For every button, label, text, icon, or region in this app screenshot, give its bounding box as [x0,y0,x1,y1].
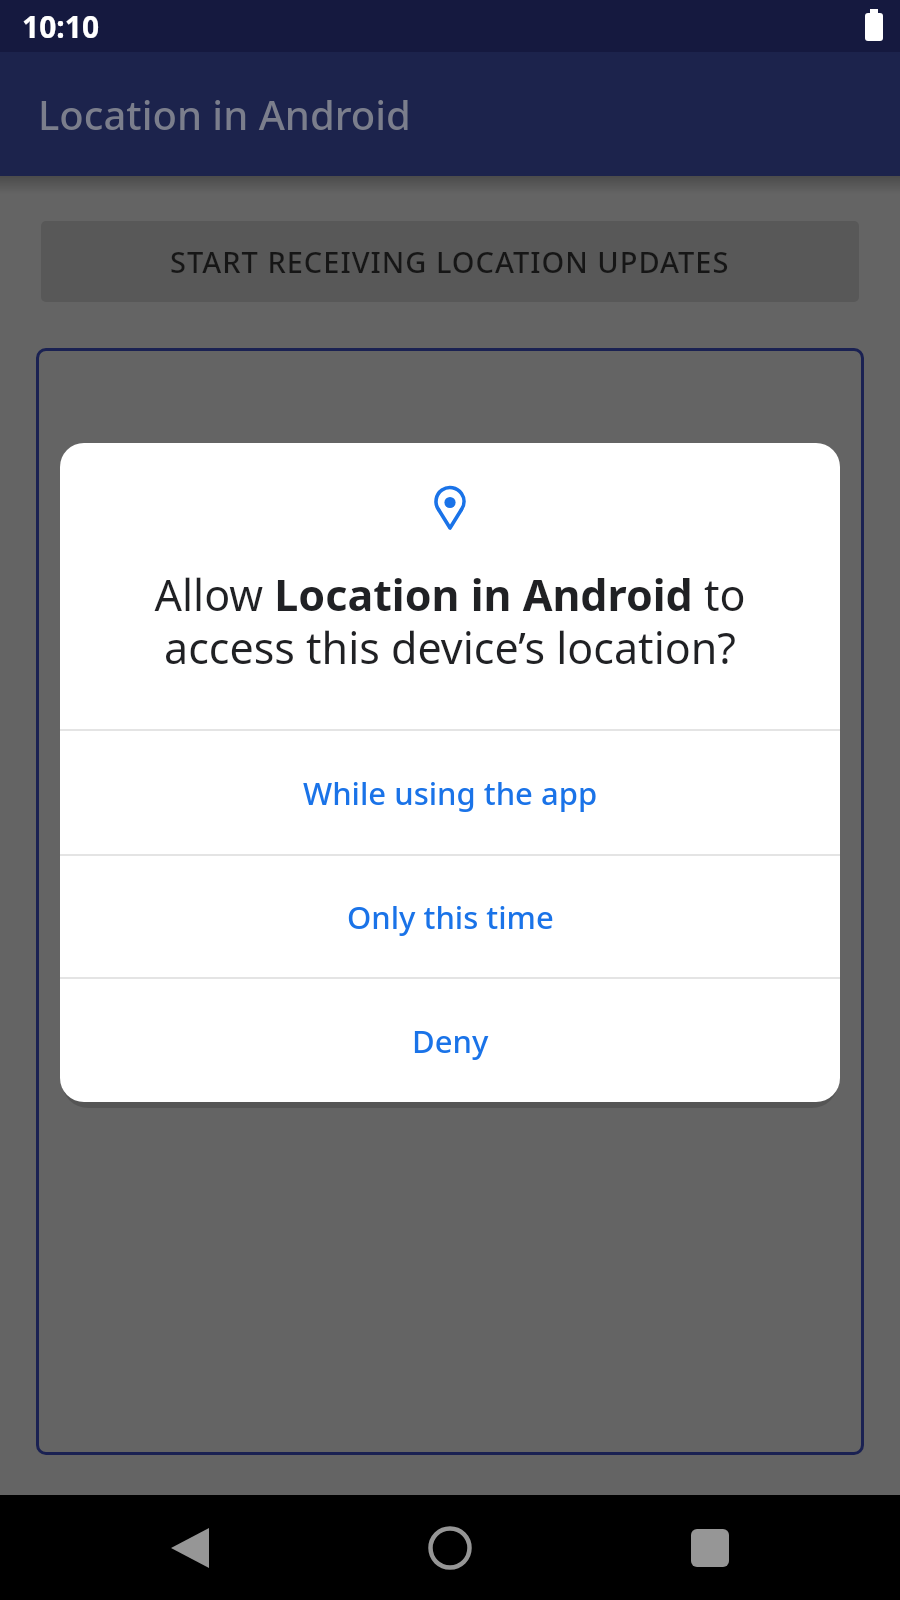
button[interactable]: Only this time [60,856,840,977]
button[interactable] [155,1513,225,1583]
staticText: START RECEIVING LOCATION UPDATES [170,242,730,281]
staticText: 10:10 [22,6,100,47]
button[interactable]: START RECEIVING LOCATION UPDATES [41,221,859,302]
staticText: Only this time [347,896,554,938]
staticText: Location in Android [38,87,411,141]
staticText: Deny [412,1020,489,1062]
staticText: Allow Location in Android to access this… [90,565,810,676]
staticText: While using the app [303,772,598,814]
button[interactable]: While using the app [60,731,840,854]
button[interactable] [675,1513,745,1583]
button[interactable] [415,1513,485,1583]
button[interactable]: Deny [60,979,840,1102]
